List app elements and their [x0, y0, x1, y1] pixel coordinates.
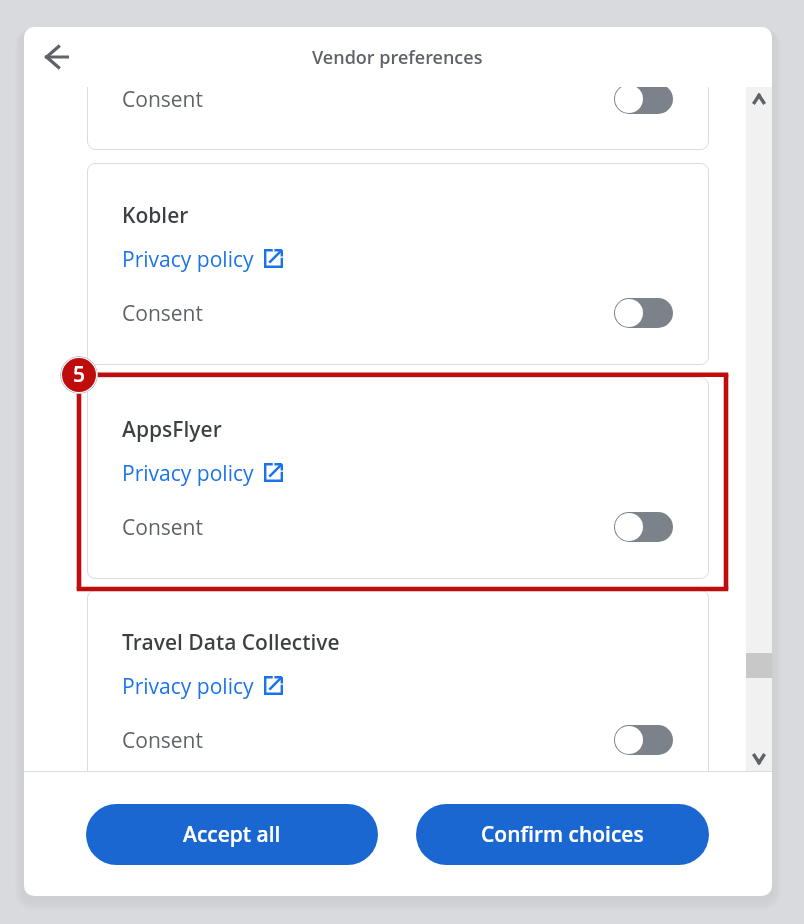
button[interactable]: Privacy policy	[122, 244, 283, 274]
button[interactable]: Consent	[122, 297, 673, 329]
staticText: Privacy policy	[122, 672, 254, 701]
staticText: Consent	[122, 299, 203, 328]
button[interactable]: Consent	[122, 724, 673, 756]
button[interactable]: Consent toggle	[614, 87, 673, 114]
button[interactable]: Privacy policy	[122, 671, 283, 701]
staticText: Privacy policy	[122, 245, 254, 274]
button[interactable]: Consent toggle	[614, 298, 673, 328]
staticText: Privacy policy	[122, 459, 254, 488]
staticText: Confirm choices	[481, 820, 644, 849]
button[interactable]: Consent toggle	[614, 512, 673, 542]
button[interactable]: Consent toggle	[614, 725, 673, 755]
staticText: 5	[73, 360, 85, 389]
staticText: AppsFlyer	[122, 415, 222, 444]
button[interactable]: Accept all	[86, 804, 378, 865]
staticText: Travel Data Collective	[122, 628, 340, 657]
button[interactable]: Confirm choices	[416, 804, 709, 865]
button[interactable]: Scroll up	[746, 87, 772, 113]
other: Opens in new window	[264, 249, 283, 268]
other: Opens in new window	[264, 463, 283, 482]
staticText: Kobler	[122, 201, 189, 230]
staticText: Consent	[122, 513, 203, 542]
other: Opens in new window	[264, 676, 283, 695]
staticText: Consent	[122, 87, 203, 114]
button[interactable]: Back	[33, 33, 81, 81]
staticText: Consent	[122, 726, 203, 755]
button[interactable]: Privacy policy	[122, 458, 283, 488]
button[interactable]: Scroll down	[746, 745, 772, 771]
button[interactable]: Consent	[122, 87, 673, 115]
staticText: Accept all	[183, 820, 281, 849]
button[interactable]: Consent	[122, 511, 673, 543]
staticText: Vendor preferences	[312, 45, 483, 70]
